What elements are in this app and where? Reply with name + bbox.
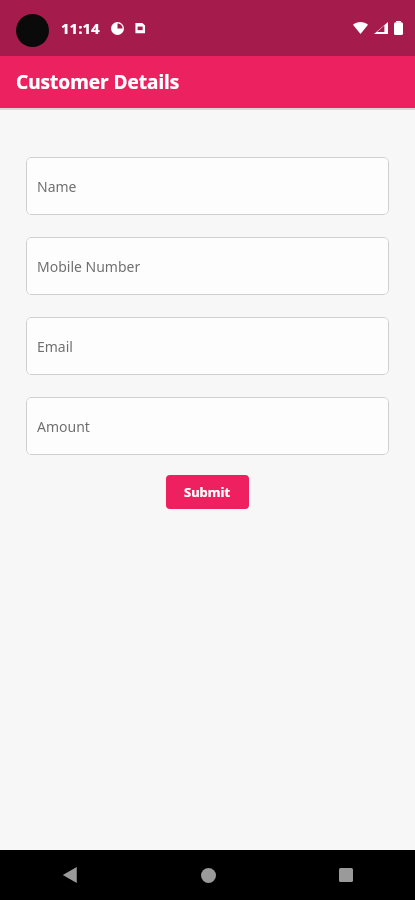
staticText: Email	[37, 337, 73, 356]
button[interactable]: Mobile Number	[26, 237, 389, 295]
staticText: Amount	[37, 417, 90, 436]
staticText: Customer Details	[16, 69, 180, 95]
button[interactable]: Submit	[166, 475, 249, 509]
button[interactable]: Recent apps	[277, 850, 415, 900]
button[interactable]: Name	[26, 157, 389, 215]
button[interactable]: Email	[26, 317, 389, 375]
staticText: Name	[37, 177, 77, 196]
button[interactable]: Back	[0, 850, 139, 900]
button[interactable]: Home	[139, 850, 277, 900]
staticText: 11:14	[61, 18, 100, 38]
button[interactable]: Amount	[26, 397, 389, 455]
staticText: Submit	[184, 483, 231, 501]
staticText: Mobile Number	[37, 257, 141, 276]
